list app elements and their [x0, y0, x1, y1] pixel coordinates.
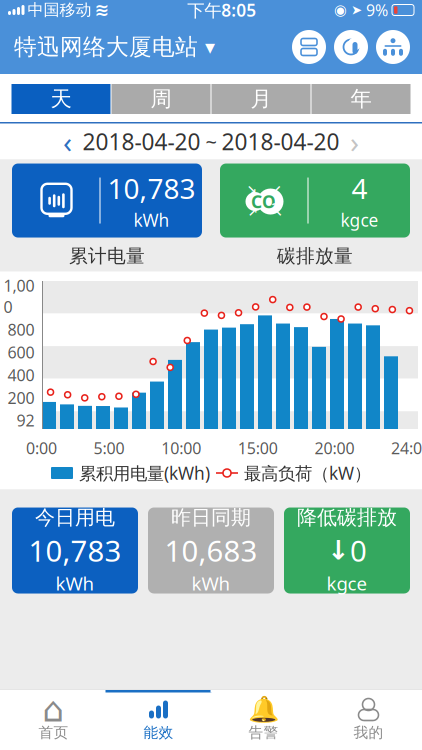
staticText: 降低碳排放 — [297, 505, 397, 530]
button[interactable]: 列表 — [292, 30, 326, 64]
staticText: 10,683 — [164, 531, 257, 570]
button[interactable]: 降低碳排放 — [284, 507, 410, 593]
staticText: 🔔 — [247, 695, 279, 724]
button[interactable]: 昨日同期 — [148, 507, 274, 593]
staticText: 600 — [7, 342, 34, 363]
staticText: 10,783 — [107, 169, 195, 207]
staticText: 1,000 — [3, 275, 34, 317]
staticText: ↖ — [272, 206, 282, 219]
staticText: 92 — [16, 410, 34, 431]
staticText: 24:0 — [391, 437, 422, 459]
button[interactable]: CO — [220, 163, 410, 237]
staticText: ↓ — [327, 535, 349, 566]
staticText: kWh — [133, 209, 169, 232]
staticText: 年 — [350, 86, 371, 112]
staticText: kWh — [55, 571, 94, 596]
button[interactable]: 我的 — [316, 690, 421, 750]
button[interactable]: 年 — [311, 84, 410, 114]
staticText: ▾ — [205, 36, 215, 58]
button[interactable]: 天 — [11, 84, 110, 114]
staticText: 15:00 — [238, 437, 278, 459]
staticText: 周 — [150, 86, 171, 112]
staticText: ⌂ — [42, 690, 64, 729]
staticText: 0:00 — [26, 437, 57, 459]
staticText: 4 — [351, 169, 367, 207]
staticText: 我的 — [353, 723, 383, 741]
button[interactable]: 周 — [111, 84, 210, 114]
staticText: 2018-04-20 — [221, 126, 339, 156]
staticText: 下午8:05 — [187, 0, 256, 21]
button[interactable]: 设备拓扑 — [376, 30, 410, 64]
staticText: ↘ — [246, 183, 256, 196]
staticText: 10:00 — [161, 437, 201, 459]
button[interactable]: 能效 — [106, 690, 211, 750]
staticText: 最高负荷（kW） — [244, 461, 371, 484]
staticText: 碳排放量 — [277, 244, 353, 267]
staticText: kgce — [326, 571, 367, 596]
staticText: 累积用电量(kWh) — [79, 461, 210, 484]
staticText: 天 — [50, 86, 71, 112]
staticText: 能效 — [143, 723, 173, 741]
staticText: ~ — [200, 128, 221, 155]
button[interactable]: 10,783 — [12, 163, 202, 237]
button[interactable]: 下一天 — [339, 126, 369, 156]
button[interactable]: 特迅网络大厦电站 — [0, 33, 215, 61]
staticText: 10,783 — [28, 531, 121, 570]
staticText: 昨日同期 — [171, 505, 251, 530]
staticText: ‹ — [63, 122, 72, 161]
staticText: ◉ — [334, 2, 347, 18]
button[interactable]: 🔔 — [211, 690, 316, 750]
staticText: 400 — [7, 364, 34, 386]
staticText: kWh — [191, 571, 230, 596]
staticText: 首页 — [38, 723, 68, 741]
staticText: 2 — [271, 200, 277, 214]
staticText: 中国移动 — [27, 0, 91, 20]
button[interactable]: ⌂ — [1, 690, 106, 750]
staticText: 今日用电 — [35, 505, 115, 530]
staticText: 特迅网络大厦电站 — [14, 33, 198, 61]
staticText: 告警 — [248, 723, 278, 741]
staticText: 200 — [7, 387, 34, 408]
button[interactable]: 上一天 — [52, 126, 82, 156]
staticText: › — [350, 122, 359, 161]
staticText: 5:00 — [94, 437, 125, 459]
staticText: 800 — [7, 319, 34, 340]
staticText: 累计电量 — [69, 244, 145, 267]
staticText: ≋ — [94, 0, 109, 20]
staticText: 月 — [250, 86, 271, 112]
staticText: 20:00 — [314, 437, 354, 459]
staticText: ↗ — [247, 206, 257, 219]
staticText: ↙ — [271, 183, 281, 196]
button[interactable]: 月 — [211, 84, 310, 114]
staticText: kgce — [340, 209, 378, 232]
staticText: 2018-04-20 — [82, 126, 200, 156]
button[interactable]: 今日用电 — [12, 507, 138, 593]
staticText: 9% — [366, 0, 388, 21]
staticText: CO — [251, 190, 276, 213]
staticText: 0 — [350, 531, 367, 570]
staticText: ➤ — [351, 2, 362, 17]
button[interactable]: 电话 — [334, 30, 368, 64]
